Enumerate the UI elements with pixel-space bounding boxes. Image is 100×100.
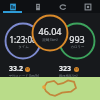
- staticText: 323: [59, 64, 72, 74]
- button[interactable]: Route map: [0, 77, 100, 100]
- staticText: 33.2: [9, 64, 23, 74]
- staticText: カロリー: [70, 45, 85, 49]
- staticText: 平均スピード (km/h): [9, 74, 39, 77]
- staticText: 獲得標高 (m): [59, 74, 78, 77]
- staticText: タイム: [18, 45, 29, 49]
- staticText: 46.04: [38, 25, 62, 37]
- staticText: 993: [69, 33, 85, 45]
- button[interactable]: Calories 993: [58, 22, 96, 60]
- button[interactable]: Distance 46.04 kilometres: [31, 14, 69, 52]
- staticText: 1:23:08: [9, 34, 37, 45]
- button[interactable]: Laps: [25, 0, 50, 13]
- button[interactable]: Elapsed time 1:23:08: [4, 22, 42, 60]
- button[interactable]: Heart rate: [50, 0, 75, 13]
- button[interactable]: Activity summary: [0, 0, 25, 13]
- button[interactable]: Elevation gain 323 metres: [50, 62, 100, 77]
- staticText: 距離 (km): [42, 37, 58, 42]
- button[interactable]: Details: [75, 0, 100, 13]
- button[interactable]: Average speed 33.2 kilometres per hour: [0, 62, 50, 77]
